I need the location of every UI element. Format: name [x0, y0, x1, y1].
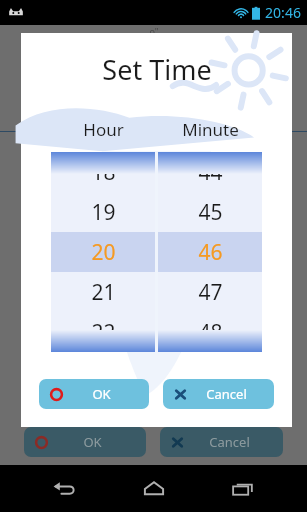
button[interactable]: 44 — [158, 152, 262, 192]
staticText: 20:46 — [265, 3, 301, 22]
button[interactable]: 21 — [51, 272, 155, 312]
button[interactable]: 18 — [51, 152, 155, 352]
staticText: 46 — [198, 238, 223, 267]
button[interactable]: 18 — [51, 152, 155, 192]
button[interactable]: Back — [39, 465, 89, 512]
staticText: 44 — [198, 158, 223, 187]
staticText: 20 — [91, 238, 116, 267]
button[interactable]: 48 — [158, 312, 262, 352]
staticText: 22 — [91, 318, 116, 347]
button[interactable]: 44 — [158, 152, 262, 352]
button[interactable]: Home — [129, 465, 179, 512]
staticText: Cancel — [206, 385, 247, 403]
staticText: 47 — [198, 278, 223, 307]
button[interactable]: 22 — [51, 312, 155, 352]
staticText: Hour — [83, 118, 124, 141]
button[interactable]: Cancel — [163, 379, 274, 409]
button[interactable]: Recent apps — [218, 465, 268, 512]
staticText: Minute — [182, 118, 239, 141]
staticText: Cancel — [209, 433, 250, 451]
button[interactable]: 46 — [158, 232, 262, 272]
staticText: 45 — [198, 198, 223, 227]
staticText: OK — [83, 433, 102, 451]
button[interactable]: 45 — [158, 192, 262, 232]
button[interactable]: OK — [39, 379, 149, 409]
button[interactable]: 19 — [51, 192, 155, 232]
staticText: 48 — [198, 318, 223, 347]
staticText: o" — [149, 25, 159, 35]
staticText: Set Time — [102, 51, 212, 88]
button[interactable]: 47 — [158, 272, 262, 312]
staticText: 21 — [91, 278, 116, 307]
staticText: OK — [92, 385, 111, 403]
staticText: 19 — [91, 198, 116, 227]
staticText: 18 — [91, 158, 116, 187]
button[interactable]: 20 — [51, 232, 155, 272]
